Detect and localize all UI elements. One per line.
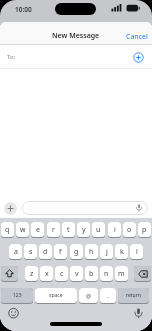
button[interactable] (1, 266, 18, 282)
button[interactable] (134, 266, 151, 282)
button[interactable]: To: (0, 45, 152, 69)
button[interactable] (4, 202, 17, 215)
staticText: y (82, 225, 86, 235)
staticText: o (127, 225, 132, 235)
staticText: r (52, 225, 55, 235)
button[interactable]: f (54, 244, 67, 260)
button[interactable]: . (100, 288, 116, 304)
button[interactable]: l (130, 244, 143, 260)
button[interactable]: m (115, 266, 128, 282)
staticText: g (74, 247, 79, 257)
button[interactable] (8, 308, 19, 319)
staticText: return (126, 292, 141, 299)
staticText: c (60, 269, 64, 279)
button[interactable]: v (70, 266, 83, 282)
button[interactable] (22, 201, 148, 215)
button[interactable]: i (108, 222, 121, 238)
staticText: v (75, 269, 79, 279)
button[interactable]: r (47, 222, 60, 238)
button[interactable]: d (39, 244, 52, 260)
staticText: t (67, 225, 70, 235)
staticText: w (20, 225, 26, 235)
staticText: l (136, 247, 138, 257)
staticText: s (29, 247, 33, 257)
button[interactable]: y (77, 222, 90, 238)
button[interactable]: x (40, 266, 53, 282)
button[interactable]: b (85, 266, 98, 282)
button[interactable]: w (16, 222, 29, 238)
staticText: f (59, 247, 62, 257)
button[interactable]: return (118, 288, 149, 304)
staticText: j (106, 247, 108, 257)
button[interactable]: 123 (1, 288, 33, 304)
staticText: @ (86, 292, 91, 299)
button[interactable]: q (1, 222, 14, 238)
button[interactable]: t (62, 222, 75, 238)
button[interactable]: s (24, 244, 37, 260)
staticText: space (49, 292, 63, 299)
staticText: m (118, 269, 125, 279)
button[interactable]: c (55, 266, 68, 282)
staticText: Cancel (126, 32, 148, 42)
button[interactable]: e (31, 222, 44, 238)
button[interactable]: p (138, 222, 151, 238)
staticText: x (45, 269, 49, 279)
staticText: To: (7, 53, 16, 61)
staticText: 10:00 (15, 5, 32, 14)
button[interactable]: z (25, 266, 38, 282)
staticText: q (5, 225, 10, 235)
button[interactable]: a (9, 244, 22, 260)
button[interactable] (133, 308, 144, 319)
staticText: d (43, 247, 48, 257)
button[interactable] (133, 52, 144, 63)
staticText: b (89, 269, 94, 279)
button[interactable]: Cancel (126, 32, 152, 45)
button[interactable]: @ (79, 288, 98, 304)
button[interactable]: space (35, 288, 77, 304)
button[interactable]: g (70, 244, 83, 260)
staticText: e (36, 225, 40, 235)
button[interactable]: n (100, 266, 113, 282)
staticText: z (30, 269, 34, 279)
button[interactable]: u (92, 222, 105, 238)
staticText: i (114, 225, 116, 235)
staticText: p (142, 225, 147, 235)
staticText: u (96, 225, 101, 235)
staticText: a (14, 247, 18, 257)
staticText: 123 (13, 292, 22, 299)
button[interactable]: k (115, 244, 128, 260)
staticText: n (104, 269, 109, 279)
staticText: h (89, 247, 94, 257)
button[interactable]: o (123, 222, 136, 238)
button[interactable]: j (100, 244, 113, 260)
staticText: k (120, 247, 124, 257)
staticText: New Message (52, 31, 100, 41)
staticText: . (107, 291, 109, 301)
button[interactable]: h (85, 244, 98, 260)
